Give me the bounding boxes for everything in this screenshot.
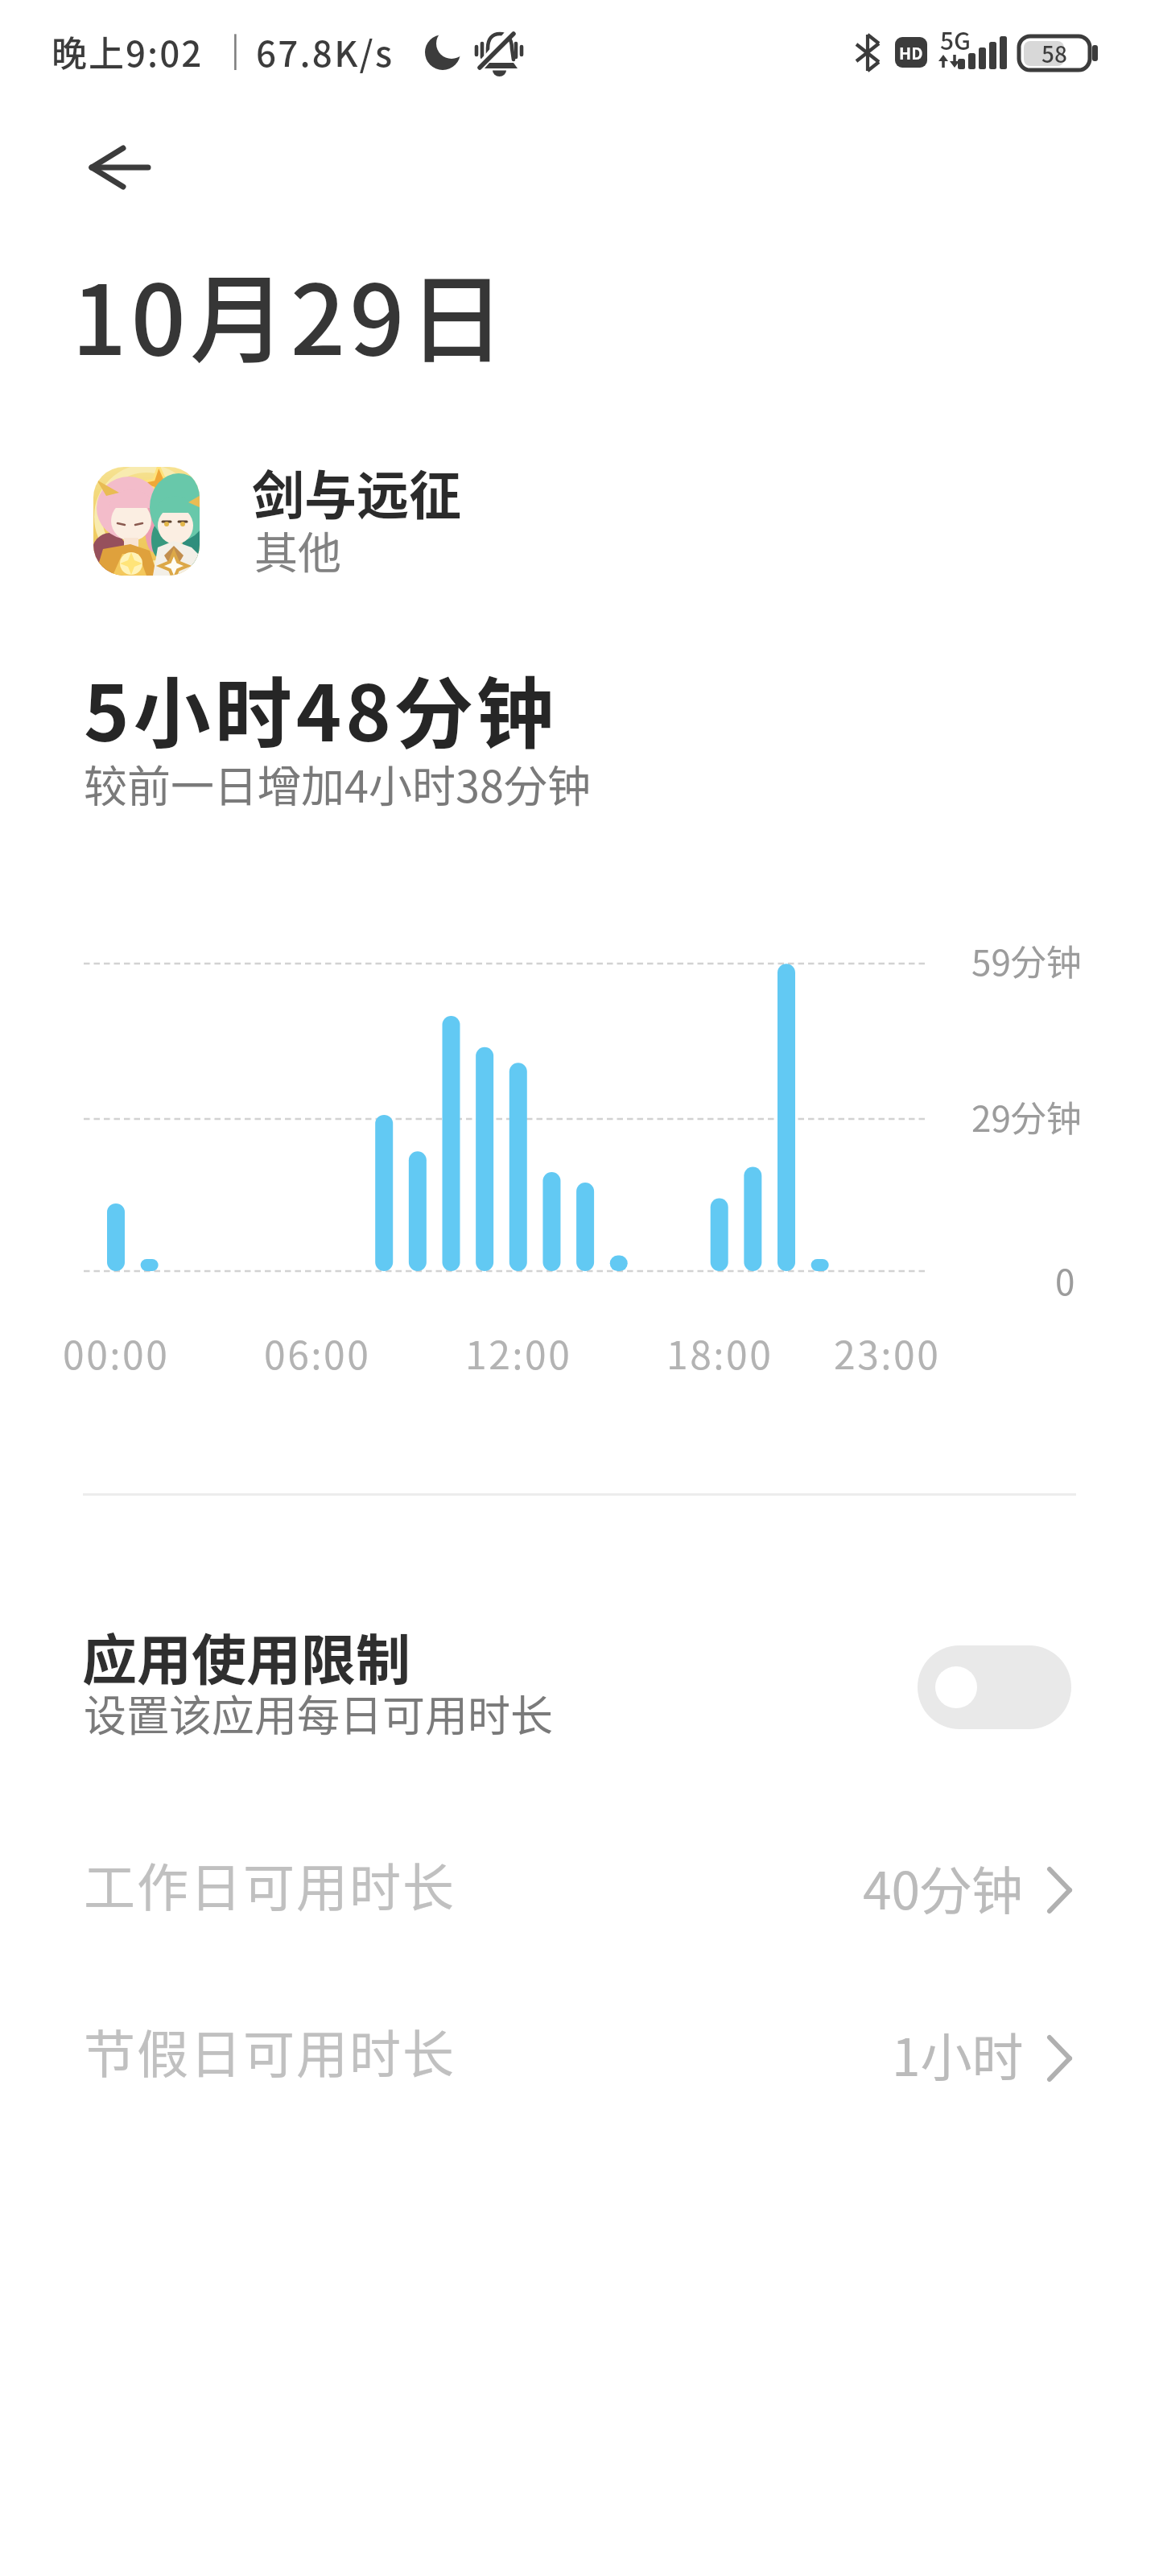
button[interactable]: [0, 1843, 1159, 1940]
staticText: 剑与远征: [252, 454, 462, 530]
staticText: |: [231, 24, 240, 71]
button[interactable]: [80, 456, 563, 584]
staticText: 59分钟: [971, 935, 1082, 986]
staticText: 应用使用限制: [82, 1616, 411, 1695]
staticText: 10月29日: [72, 243, 509, 383]
staticText: 晚上9:02: [52, 26, 204, 77]
button[interactable]: [77, 135, 164, 200]
staticText: 较前一日增加4小时38分钟: [84, 752, 591, 815]
staticText: 40分钟: [863, 1850, 1024, 1925]
staticText: HD: [899, 41, 923, 64]
staticText: 设置该应用每日可用时长: [84, 1682, 553, 1744]
staticText: 29分钟: [971, 1091, 1082, 1142]
staticText: 1小时: [892, 2017, 1024, 2091]
staticText: 5G: [940, 22, 971, 56]
button[interactable]: [0, 1610, 1159, 1755]
staticText: 12:00: [465, 1324, 572, 1381]
staticText: 58: [1041, 37, 1067, 70]
button[interactable]: [918, 1645, 1071, 1729]
staticText: 06:00: [264, 1324, 371, 1381]
staticText: 工作日可用时长: [84, 1847, 456, 1922]
staticText: 其他: [254, 518, 341, 581]
staticText: 5小时48分钟: [84, 652, 558, 764]
staticText: 18:00: [666, 1324, 773, 1381]
staticText: 67.8K/s: [256, 26, 394, 77]
staticText: 23:00: [834, 1324, 941, 1381]
staticText: 00:00: [63, 1324, 170, 1381]
staticText: 节假日可用时长: [84, 2013, 456, 2088]
button[interactable]: [0, 2010, 1159, 2107]
staticText: 0: [1055, 1254, 1075, 1306]
